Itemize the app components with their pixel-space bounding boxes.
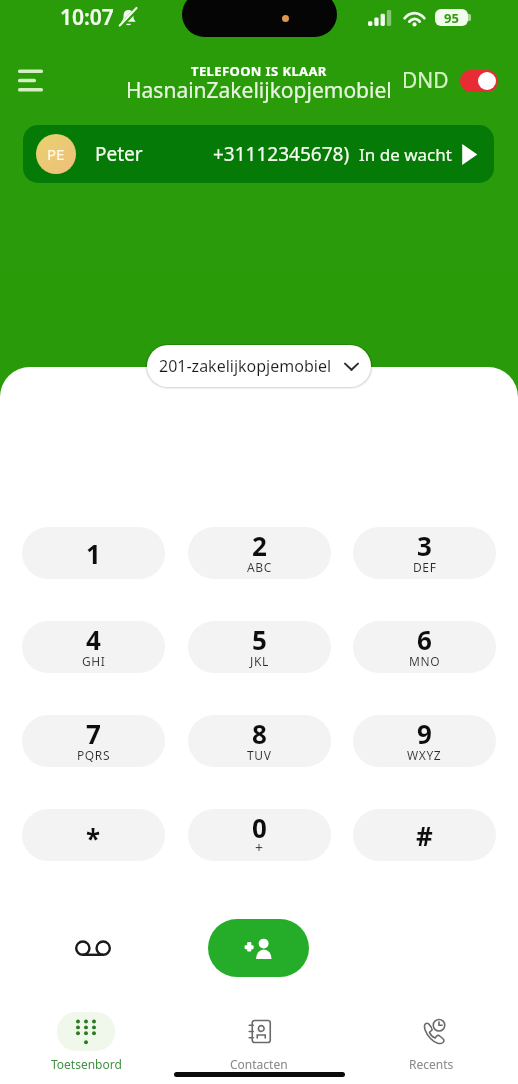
button[interactable]: 8: [188, 715, 331, 767]
staticText: 2: [252, 528, 267, 563]
button[interactable]: 1: [22, 527, 165, 579]
staticText: Contacten: [230, 1056, 288, 1072]
staticText: TUV: [247, 747, 272, 763]
staticText: WXYZ: [407, 747, 442, 763]
button[interactable]: 2: [188, 527, 331, 579]
staticText: +31112345678): [213, 141, 350, 167]
staticText: 8: [252, 716, 267, 751]
staticText: 6: [417, 622, 432, 657]
staticText: 10:07: [60, 3, 114, 32]
staticText: #: [416, 818, 433, 853]
button[interactable]: 6: [353, 621, 496, 673]
staticText: ABC: [247, 559, 272, 575]
staticText: PQRS: [77, 747, 111, 763]
staticText: PE: [47, 144, 65, 164]
staticText: 0: [252, 810, 267, 845]
button[interactable]: Add contact: [208, 919, 309, 977]
staticText: HasnainZakelijkopjemobiel: [126, 76, 392, 105]
button[interactable]: PE: [23, 125, 494, 183]
staticText: 9: [417, 716, 432, 751]
staticText: JKL: [250, 653, 269, 669]
button[interactable]: 7: [22, 715, 165, 767]
staticText: 3: [417, 528, 432, 563]
staticText: 7: [86, 716, 101, 751]
staticText: DEF: [413, 559, 437, 575]
staticText: +: [255, 838, 264, 857]
staticText: 95: [444, 9, 459, 26]
staticText: 1: [86, 536, 101, 571]
button[interactable]: 9: [353, 715, 496, 767]
staticText: In de wacht: [359, 143, 452, 166]
staticText: 5: [252, 622, 267, 657]
button[interactable]: 0: [188, 809, 331, 861]
button[interactable]: 4: [22, 621, 165, 673]
button[interactable]: Menu: [8, 58, 52, 102]
staticText: Toetsenbord: [51, 1056, 122, 1072]
button[interactable]: Toetsenbord: [0, 1005, 172, 1072]
staticText: Peter: [95, 141, 143, 167]
button[interactable]: Contacten: [172, 1005, 345, 1072]
button[interactable]: 3: [353, 527, 496, 579]
staticText: GHI: [82, 653, 106, 669]
button[interactable]: 5: [188, 621, 331, 673]
staticText: 4: [86, 622, 101, 657]
staticText: 201-zakelijkopjemobiel: [159, 355, 332, 377]
button[interactable]: DND: [398, 62, 502, 99]
staticText: TELEFOON IS KLAAR: [191, 62, 327, 80]
staticText: DND: [402, 66, 449, 95]
staticText: Recents: [409, 1056, 454, 1072]
button[interactable]: #: [353, 809, 496, 861]
button[interactable]: Recents: [345, 1005, 518, 1072]
button[interactable]: *: [22, 809, 165, 861]
button[interactable]: 201-zakelijkopjemobiel: [147, 345, 371, 387]
button[interactable]: Voicemail: [68, 923, 118, 973]
staticText: *: [86, 821, 101, 856]
staticText: MNO: [409, 653, 441, 669]
